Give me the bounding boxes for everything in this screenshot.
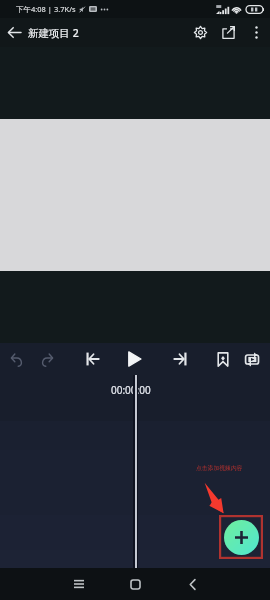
button[interactable]: Redo xyxy=(35,347,59,372)
button[interactable]: Back xyxy=(2,18,26,47)
button[interactable]: Add video xyxy=(224,520,259,555)
button[interactable]: Settings xyxy=(187,18,213,47)
button[interactable]: Undo xyxy=(5,347,29,372)
staticText: 新建项目 2 xyxy=(28,26,79,40)
button[interactable]: Home xyxy=(120,568,150,600)
button[interactable]: Add marker xyxy=(211,346,235,373)
staticText: 点击添加视频内容 xyxy=(196,464,243,471)
button[interactable]: Play xyxy=(121,345,148,373)
button[interactable]: Export xyxy=(215,18,241,47)
button[interactable]: Loop playback xyxy=(239,346,266,373)
button[interactable]: More options xyxy=(244,18,268,47)
staticText: 00:00:00 xyxy=(111,383,151,397)
button[interactable]: Skip to end xyxy=(168,346,193,372)
button[interactable]: Back xyxy=(177,568,207,600)
staticText: 下午4:08 | 3.7K/s xyxy=(16,4,76,14)
button[interactable]: Skip to start xyxy=(80,346,105,372)
button[interactable]: Recent apps xyxy=(64,568,94,600)
